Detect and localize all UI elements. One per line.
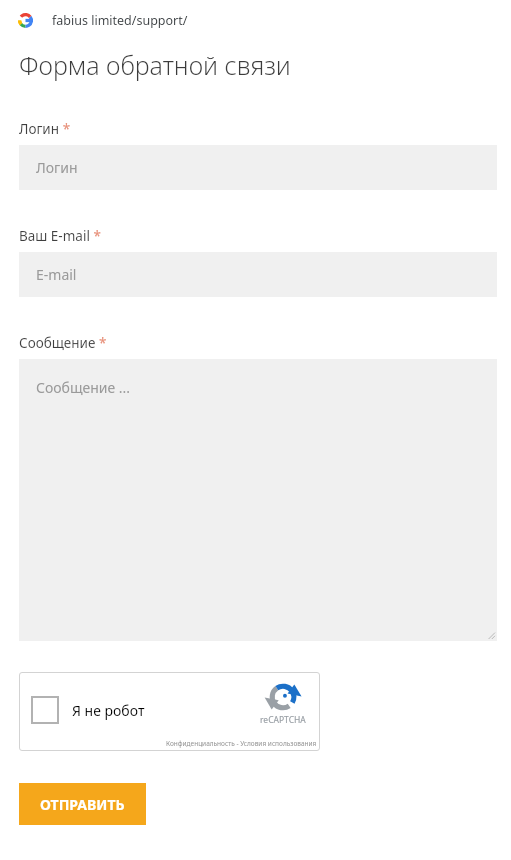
staticText: Ваш E-mail *	[19, 226, 101, 245]
button[interactable]: Логин	[19, 145, 497, 190]
staticText: Логин *	[19, 119, 71, 138]
staticText: Конфиденциальность - Условия использован…	[166, 739, 317, 748]
button[interactable]: Сообщение ...	[19, 359, 497, 641]
button[interactable]: E-mail	[19, 252, 497, 297]
staticText: Сообщение ...	[36, 378, 131, 397]
staticText: Логин	[36, 158, 78, 177]
staticText: reCAPTCHA	[260, 714, 306, 726]
staticText: fabius limited/support/	[52, 12, 188, 29]
staticText: Я не робот	[72, 701, 145, 720]
button[interactable]: fabius limited/support/	[18, 8, 188, 32]
button[interactable]: Я не робот	[31, 696, 59, 724]
button[interactable]: ОТПРАВИТЬ	[19, 783, 146, 825]
staticText: Форма обратной связи	[19, 48, 291, 82]
button[interactable]: Я не робот	[19, 672, 320, 751]
staticText: ОТПРАВИТЬ	[40, 795, 125, 814]
staticText: Сообщение *	[19, 333, 107, 352]
staticText: E-mail	[36, 265, 77, 284]
